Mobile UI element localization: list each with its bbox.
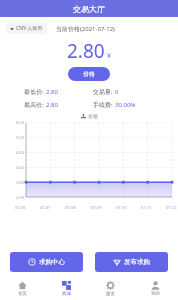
staticText: 2.80 bbox=[46, 88, 58, 96]
other: 商城 bbox=[62, 281, 71, 290]
staticText: 07-09 bbox=[91, 205, 102, 210]
button[interactable]: CNY-人民币 bbox=[6, 23, 47, 34]
staticText: 求购中心 bbox=[39, 258, 65, 266]
staticText: 07-06 bbox=[15, 205, 26, 210]
other: 首页 bbox=[18, 281, 27, 290]
staticText: 价格 bbox=[83, 70, 95, 78]
staticText: 6.00 bbox=[16, 120, 24, 125]
button[interactable]: 首页 bbox=[0, 277, 44, 300]
staticText: 发布求购 bbox=[124, 258, 150, 266]
staticText: 30.00% bbox=[115, 101, 136, 109]
other: 我的 bbox=[151, 281, 160, 290]
staticText: 当前价格(2021-07-12) bbox=[56, 25, 115, 33]
staticText: 2.80 bbox=[46, 101, 58, 109]
staticText: 3.60 bbox=[16, 165, 24, 170]
staticText: 服务 bbox=[106, 291, 115, 297]
button[interactable]: 价格 bbox=[68, 67, 110, 81]
staticText: 手续费: bbox=[93, 101, 113, 109]
other: 服务 bbox=[106, 281, 115, 290]
staticText: 2.80 bbox=[16, 180, 24, 185]
staticText: CNY-人民币 bbox=[16, 25, 43, 32]
staticText: 07-12 bbox=[166, 205, 177, 210]
staticText: 2.00 bbox=[16, 195, 24, 200]
staticText: 5.20 bbox=[16, 135, 24, 140]
staticText: 首页 bbox=[18, 291, 27, 297]
staticText: 4.40 bbox=[16, 150, 24, 155]
staticText: 我的 bbox=[151, 291, 160, 297]
staticText: ¥ bbox=[107, 51, 112, 61]
staticText: 2.80 bbox=[67, 38, 105, 64]
button[interactable]: 我的 bbox=[133, 277, 178, 300]
staticText: 07-10 bbox=[116, 205, 127, 210]
button[interactable]: 商城 bbox=[44, 277, 88, 300]
button[interactable]: 求购中心 bbox=[10, 252, 83, 272]
staticText: 交易大厅 bbox=[73, 4, 105, 14]
staticText: 价格 bbox=[88, 113, 98, 119]
staticText: 最高价: bbox=[24, 101, 44, 109]
button[interactable]: 发布求购 bbox=[95, 252, 168, 272]
staticText: 最低价: bbox=[24, 88, 44, 96]
button[interactable]: 服务 bbox=[88, 277, 133, 300]
staticText: 交易量: bbox=[93, 88, 113, 96]
staticText: 07-11 bbox=[141, 205, 152, 210]
staticText: 商城 bbox=[62, 291, 71, 297]
staticText: 0 bbox=[115, 88, 119, 96]
staticText: 07-07 bbox=[40, 205, 51, 210]
staticText: 07-08 bbox=[65, 205, 76, 210]
